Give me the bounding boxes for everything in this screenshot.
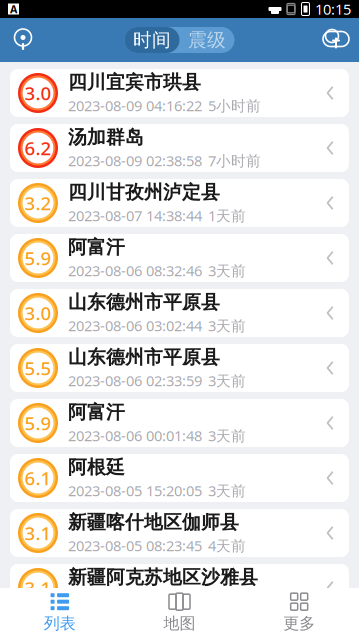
staticText: 3天前 — [208, 426, 246, 445]
staticText: 更多 — [283, 614, 315, 633]
staticText: 3天前 — [208, 261, 246, 280]
staticText: 地图 — [163, 614, 195, 633]
staticText: 5.9 — [24, 246, 51, 270]
staticText: 四川宜宾市珙县 — [68, 71, 201, 94]
staticText: 3天前 — [208, 481, 246, 500]
button[interactable]: 5.9 — [10, 399, 349, 447]
button[interactable]: 定位 — [0, 18, 46, 62]
staticText: 阿根廷 — [68, 456, 125, 479]
button[interactable]: 列表 — [0, 588, 120, 638]
staticText: 汤加群岛 — [68, 126, 144, 149]
staticText: 2023-08-09 02:38:58 — [68, 151, 202, 170]
button[interactable]: 3.0 — [10, 289, 349, 337]
staticText: 时间 — [133, 28, 171, 51]
staticText: A — [10, 2, 17, 16]
button[interactable]: 6.2 — [10, 124, 349, 172]
staticText: 3.2 — [24, 191, 51, 215]
staticText: 5.5 — [24, 356, 51, 380]
staticText: 阿富汗 — [68, 236, 125, 259]
button[interactable]: 震级 — [179, 27, 234, 53]
button[interactable]: 6.1 — [10, 454, 349, 502]
button[interactable]: 5.5 — [10, 344, 349, 392]
staticText: 2023-08-09 04:16:22 — [68, 96, 202, 115]
staticText: 2023-08-07 14:38:44 — [68, 206, 202, 225]
staticText: 新疆喀什地区伽师县 — [68, 511, 239, 534]
button[interactable]: 3.0 — [10, 69, 349, 117]
button[interactable]: 更多 — [239, 588, 359, 638]
button[interactable]: 3.1 — [10, 509, 349, 557]
staticText: 6.1 — [24, 466, 51, 490]
staticText: 震级 — [188, 28, 226, 51]
staticText: 2023-08-06 03:02:44 — [68, 316, 202, 335]
staticText: 3天前 — [208, 316, 246, 335]
button[interactable]: 时间 — [124, 27, 179, 53]
staticText: 3.0 — [24, 81, 51, 105]
staticText: 阿富汗 — [68, 401, 125, 424]
staticText: 3.1 — [24, 576, 51, 600]
staticText: 2023-08-05 08:05:45 — [68, 591, 202, 610]
staticText: 5小时前 — [208, 96, 261, 115]
staticText: 2023-08-05 08:23:45 — [68, 536, 202, 555]
button[interactable]: 3.4 — [10, 619, 349, 638]
staticText: 山东德州市平原县 — [68, 291, 220, 314]
staticText: 四川甘孜州泸定县 — [68, 181, 220, 204]
staticText: 6.2 — [24, 136, 51, 160]
staticText: 2023-08-06 08:32:46 — [68, 261, 202, 280]
staticText: 2023-08-05 15:20:05 — [68, 481, 202, 500]
staticText: 2023-08-06 00:01:48 — [68, 426, 202, 445]
staticText: 新疆阿克苏地区沙雅县 — [68, 566, 258, 589]
button[interactable]: 3.2 — [10, 179, 349, 227]
staticText: 新疆和田地区于田县 — [68, 621, 239, 638]
staticText: 5.9 — [24, 411, 51, 435]
staticText: 1天前 — [208, 206, 246, 225]
button[interactable]: 地图 — [120, 588, 239, 638]
staticText: 10:15 — [315, 0, 351, 19]
staticText: 列表 — [44, 614, 76, 633]
button[interactable]: 上传 — [313, 18, 359, 62]
staticText: 7小时前 — [208, 151, 261, 170]
staticText: 2023-08-06 02:33:59 — [68, 371, 202, 390]
staticText: 3天前 — [208, 371, 246, 390]
staticText: 山东德州市平原县 — [68, 346, 220, 369]
staticText: 4天前 — [208, 536, 246, 555]
button[interactable]: 3.1 — [10, 564, 349, 612]
button[interactable]: 5.9 — [10, 234, 349, 282]
staticText: 3.0 — [24, 301, 51, 325]
staticText: 3.1 — [24, 521, 51, 545]
